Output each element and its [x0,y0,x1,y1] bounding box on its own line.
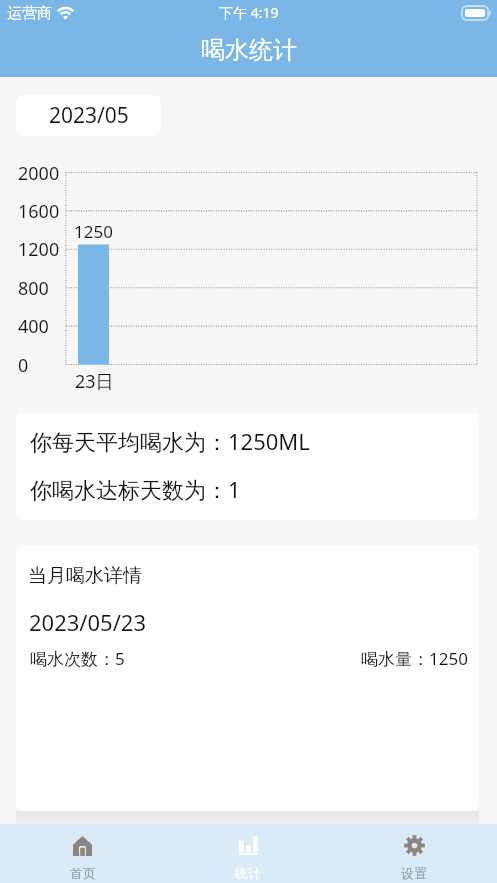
staticText: 2023/05/23 [29,607,147,637]
other: 首页 [73,836,92,856]
staticText: 喝水次数：5 [30,647,125,670]
staticText: 0 [18,353,29,378]
staticText: 运营商 [7,4,52,23]
staticText: 2000 [18,161,60,186]
staticText: 800 [18,276,49,301]
button[interactable]: 2023/05 [16,95,161,136]
staticText: 1600 [18,199,60,224]
other: 统计 [239,836,258,856]
staticText: 首页 [70,865,96,881]
staticText: 400 [18,314,49,339]
button[interactable]: 统计 [165,824,331,883]
staticText: 1250 [74,220,113,243]
staticText: 2023/05 [49,101,129,130]
staticText: 喝水量：1250 [361,647,468,670]
button[interactable]: 首页 [0,824,165,883]
staticText: 设置 [401,865,427,881]
button[interactable]: 设置 [331,824,497,883]
staticText: 统计 [235,865,261,881]
staticText: 你每天平均喝水为：1250ML [30,426,310,456]
staticText: 23日 [75,369,114,394]
staticText: 喝水统计 [201,35,297,65]
staticText: 当月喝水详情 [28,564,142,588]
staticText: 你喝水达标天数为：1 [30,474,241,504]
other: 设置 [404,835,425,856]
staticText: 下午 4:19 [219,3,279,22]
staticText: 1200 [18,237,60,262]
